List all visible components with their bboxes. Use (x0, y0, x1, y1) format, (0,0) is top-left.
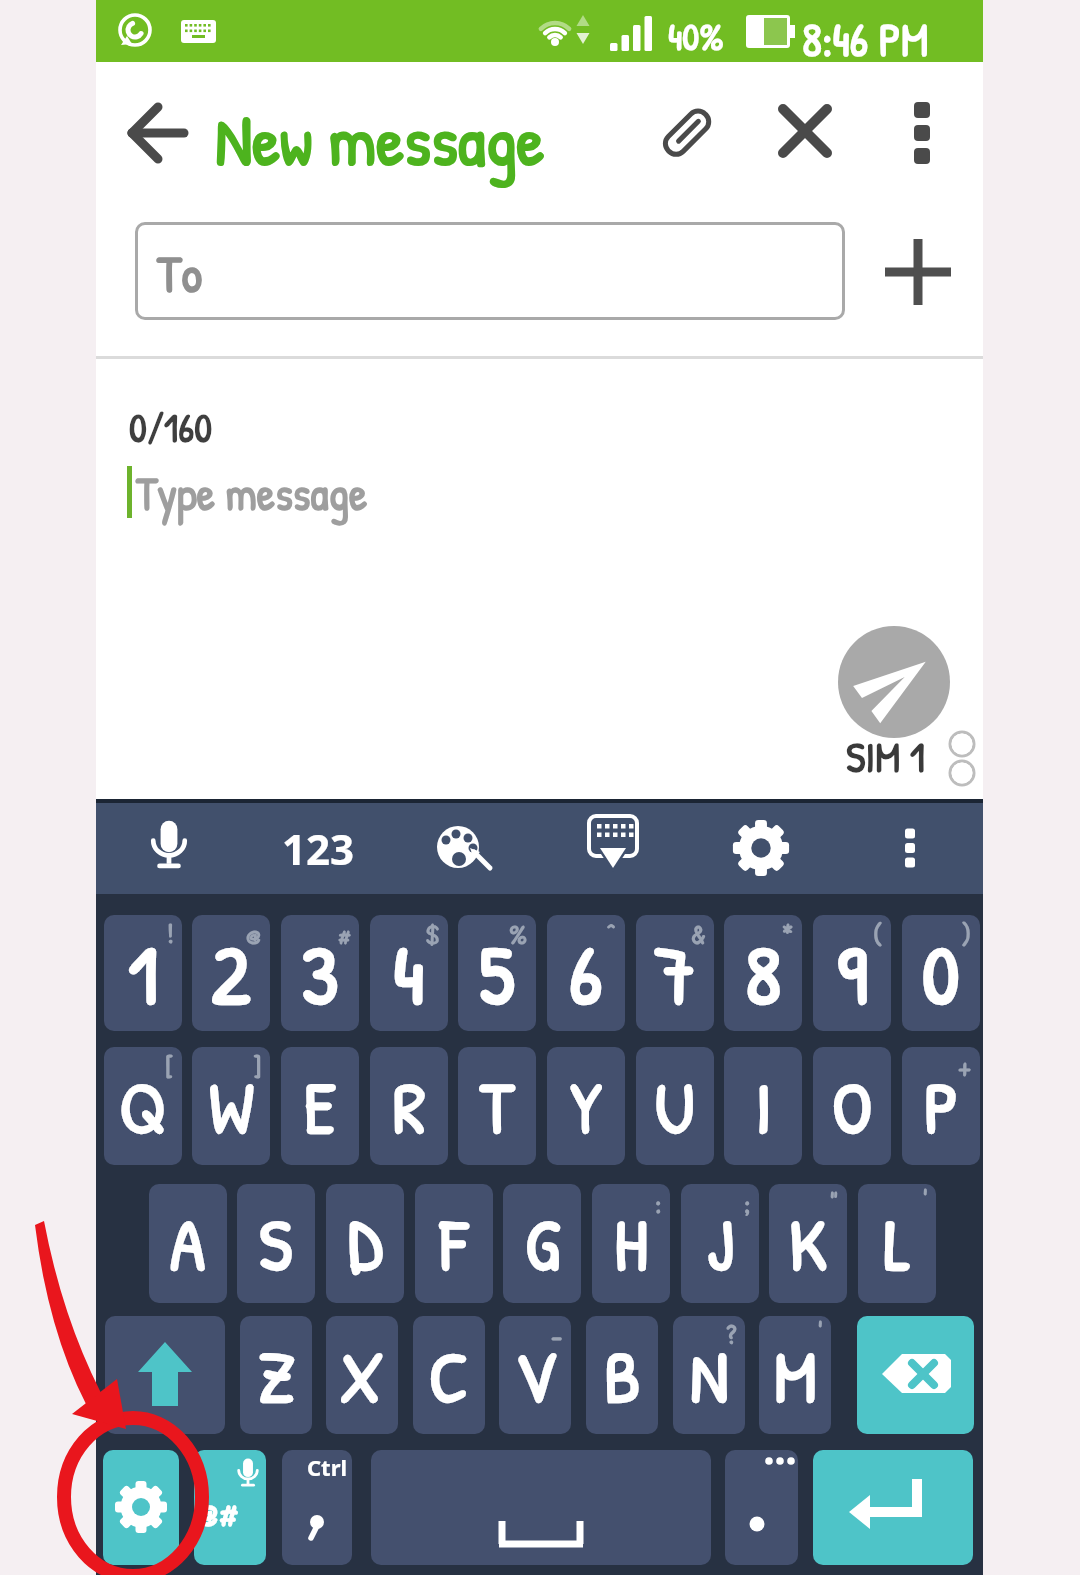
staticText: I (755, 1058, 772, 1155)
button[interactable]: Y (547, 1047, 625, 1165)
button[interactable]: W (192, 1047, 270, 1165)
staticText: 1 (128, 916, 159, 1030)
button[interactable]: 5 (458, 915, 536, 1031)
staticText: T (480, 1058, 514, 1155)
staticText: : (655, 1184, 662, 1222)
staticText: 0 (922, 916, 960, 1030)
staticText: Y (570, 1058, 602, 1155)
button[interactable] (578, 809, 648, 887)
staticText: F (440, 1195, 468, 1292)
staticText: ! (167, 915, 174, 953)
staticText: N (690, 1327, 729, 1424)
button[interactable]: 9 (813, 915, 891, 1031)
button[interactable] (896, 98, 948, 168)
button[interactable]: F (415, 1184, 493, 1303)
button[interactable]: A (149, 1184, 227, 1303)
button[interactable]: U (636, 1047, 714, 1165)
staticText: ' (818, 1316, 823, 1354)
button[interactable]: 7 (636, 915, 714, 1031)
staticText: X (340, 1327, 384, 1424)
button[interactable] (134, 813, 204, 883)
button[interactable] (120, 98, 196, 168)
button[interactable]: P (902, 1047, 980, 1165)
button[interactable]: Z (240, 1316, 312, 1434)
staticText: E (304, 1058, 336, 1155)
staticText: * (782, 915, 794, 953)
staticText: S (259, 1195, 293, 1292)
button[interactable]: D (326, 1184, 404, 1303)
button[interactable]: Q (104, 1047, 182, 1165)
button[interactable]: R (370, 1047, 448, 1165)
button[interactable]: Ctrl (282, 1450, 352, 1565)
staticText: ? (726, 1316, 737, 1354)
button[interactable]: G (503, 1184, 581, 1303)
button[interactable]: C (413, 1316, 485, 1434)
button[interactable]: 6 (547, 915, 625, 1031)
staticText: ; (744, 1184, 751, 1222)
staticText: 8 (745, 916, 782, 1030)
staticText: @ (246, 915, 262, 953)
staticText: To (157, 238, 203, 308)
button[interactable] (886, 813, 934, 883)
button[interactable]: 4 (370, 915, 448, 1031)
staticText: M (774, 1327, 817, 1424)
staticText: R (393, 1058, 426, 1155)
staticText: C (429, 1327, 469, 1424)
button[interactable]: 123 (266, 813, 370, 883)
staticText: [ (165, 1047, 174, 1085)
button[interactable]: 0 (902, 915, 980, 1031)
staticText: # (338, 915, 351, 953)
staticText: 6 (569, 916, 603, 1030)
button[interactable]: B (586, 1316, 658, 1434)
button[interactable]: O (813, 1047, 891, 1165)
button[interactable]: J (681, 1184, 759, 1303)
button[interactable]: M (759, 1316, 831, 1434)
button[interactable] (103, 1450, 179, 1565)
button[interactable] (880, 234, 956, 310)
staticText: + (958, 1047, 972, 1085)
button[interactable]: To (135, 222, 845, 320)
staticText: @# (196, 1482, 239, 1539)
staticText: L (884, 1195, 911, 1292)
button[interactable] (776, 100, 836, 164)
button[interactable] (725, 1450, 798, 1565)
button[interactable] (838, 626, 950, 738)
staticText: SIM 1 (846, 728, 926, 785)
button[interactable] (421, 813, 501, 883)
staticText: - (551, 1316, 563, 1354)
button[interactable]: K (769, 1184, 847, 1303)
button[interactable]: 8 (724, 915, 802, 1031)
button[interactable]: @# (194, 1450, 266, 1565)
staticText: 40% (668, 10, 724, 61)
button[interactable]: L (858, 1184, 936, 1303)
button[interactable] (857, 1316, 974, 1434)
staticText: ( (873, 915, 883, 953)
staticText: 8:46 PM (802, 8, 929, 70)
staticText: ' (923, 1184, 928, 1222)
staticText: U (655, 1058, 695, 1155)
staticText: 2 (211, 916, 251, 1030)
button[interactable] (813, 1450, 973, 1565)
staticText: New message (215, 92, 545, 187)
button[interactable]: V (499, 1316, 571, 1434)
button[interactable]: T (458, 1047, 536, 1165)
button[interactable]: I (724, 1047, 802, 1165)
staticText: Z (258, 1327, 295, 1424)
button[interactable] (371, 1450, 711, 1565)
staticText: 3 (301, 916, 339, 1030)
button[interactable]: X (326, 1316, 398, 1434)
staticText: ] (253, 1047, 262, 1085)
staticText: K (789, 1195, 827, 1292)
button[interactable]: E (281, 1047, 359, 1165)
staticText: 9 (837, 916, 868, 1030)
button[interactable]: H (592, 1184, 670, 1303)
button[interactable]: N (673, 1316, 745, 1434)
button[interactable] (105, 1316, 225, 1434)
button[interactable] (726, 813, 796, 883)
button[interactable]: 1 (104, 915, 182, 1031)
button[interactable]: 3 (281, 915, 359, 1031)
button[interactable]: S (237, 1184, 315, 1303)
button[interactable] (652, 98, 720, 168)
button[interactable]: 2 (192, 915, 270, 1031)
staticText: H (614, 1195, 648, 1292)
